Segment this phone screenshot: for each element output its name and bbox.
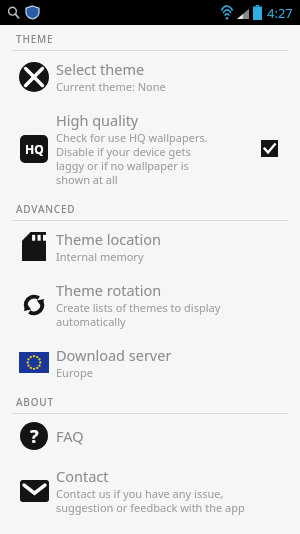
button[interactable]: Contact <box>0 458 300 523</box>
staticText: THEME <box>16 32 54 46</box>
staticText: Current theme: None <box>56 79 166 94</box>
staticText: Contact us if you have any issue, sugges… <box>56 486 245 515</box>
staticText: HQ <box>25 141 44 157</box>
button[interactable]: Theme rotation <box>0 272 300 337</box>
staticText: ABOUT <box>16 395 54 409</box>
other: Search <box>7 6 20 19</box>
button[interactable]: Select theme <box>0 51 300 102</box>
staticText: Check for use HQ wallpapers. Disable if … <box>56 130 208 187</box>
button[interactable]: Theme location <box>0 221 300 272</box>
staticText: ADVANCED <box>16 202 76 216</box>
staticText: Internal memory <box>56 249 144 264</box>
staticText: Europe <box>56 365 93 380</box>
staticText: Select theme <box>56 59 145 79</box>
staticText: Create lists of themes to display automa… <box>56 300 221 329</box>
button[interactable]: High quality <box>0 102 300 195</box>
staticText: High quality <box>56 110 139 130</box>
staticText: FAQ <box>56 426 84 446</box>
staticText: Download server <box>56 345 172 365</box>
button[interactable]: Download server <box>0 337 300 388</box>
staticText: 4:27 <box>267 4 293 22</box>
staticText: Theme location <box>56 229 162 249</box>
button[interactable]: FAQ <box>0 414 300 458</box>
staticText: Theme rotation <box>56 280 162 300</box>
staticText: ? <box>30 424 39 449</box>
staticText: Contact <box>56 466 109 486</box>
